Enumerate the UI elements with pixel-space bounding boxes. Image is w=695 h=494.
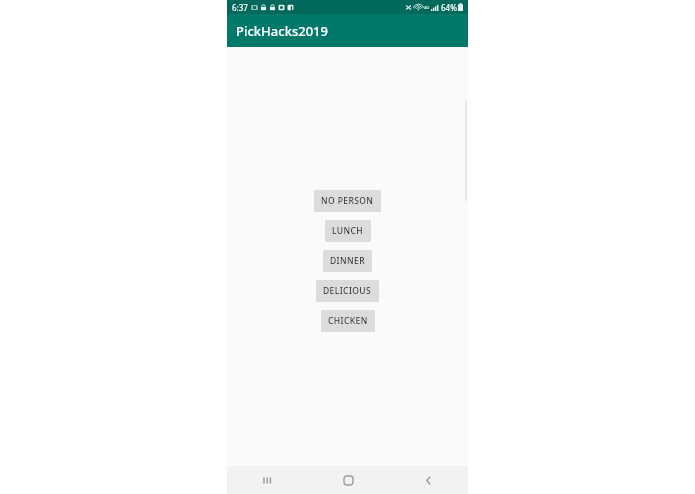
button[interactable]: CHICKEN [321, 310, 375, 332]
staticText: NO PERSON [321, 195, 374, 207]
staticText: LUNCH [332, 225, 364, 237]
button[interactable]: DINNER [323, 250, 372, 272]
staticText: 64% [441, 2, 457, 13]
button[interactable]: LUNCH [325, 220, 371, 242]
button[interactable]: DELICIOUS [316, 280, 379, 302]
staticText: CHICKEN [328, 315, 368, 327]
button[interactable]: Back [388, 466, 468, 494]
button[interactable]: Home [308, 466, 388, 494]
staticText: PickHacks2019 [236, 22, 328, 40]
staticText: 4G [424, 5, 430, 10]
button[interactable]: NO PERSON [314, 190, 381, 212]
staticText: DELICIOUS [323, 285, 372, 297]
button[interactable]: Recent apps [227, 466, 308, 494]
staticText: DINNER [330, 255, 365, 267]
staticText: 6:37 [232, 2, 248, 13]
